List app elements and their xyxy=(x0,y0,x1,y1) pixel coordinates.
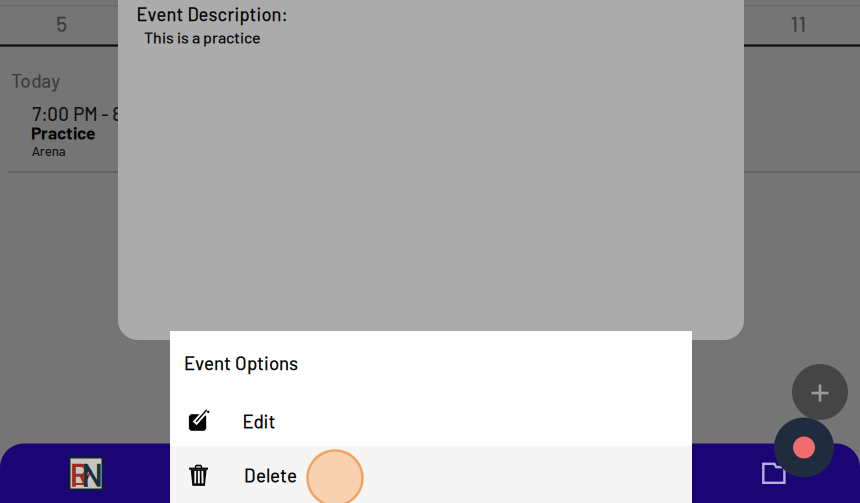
button[interactable]: 6 xyxy=(123,3,246,43)
staticText: This is a practice xyxy=(144,28,261,47)
staticText: 11 xyxy=(791,10,807,36)
button[interactable]: Home xyxy=(54,443,118,503)
staticText: 6 xyxy=(179,10,190,36)
button[interactable]: 11 xyxy=(737,3,860,43)
staticText: Practice xyxy=(31,122,95,143)
staticText: N xyxy=(81,455,102,493)
button[interactable]: Add event xyxy=(792,364,848,420)
staticText: Event Description: xyxy=(137,3,288,25)
staticText: Event Options xyxy=(184,352,298,374)
button[interactable]: Record xyxy=(774,417,834,477)
button[interactable]: Files xyxy=(742,443,806,503)
button[interactable]: Delete xyxy=(170,446,692,503)
staticText: R xyxy=(70,455,90,493)
button[interactable]: 7 xyxy=(246,3,369,43)
staticText: Arena xyxy=(32,143,66,159)
staticText: 5 xyxy=(56,10,67,36)
staticText: Delete xyxy=(244,464,297,486)
button[interactable]: 7:00 PM - 8:30 PM xyxy=(0,96,860,171)
staticText: Edit xyxy=(243,410,276,432)
button[interactable]: Edit xyxy=(170,389,692,444)
staticText: 7:00 PM - 8:30 PM xyxy=(32,102,177,125)
button[interactable]: 5 xyxy=(0,3,123,43)
staticText: Today xyxy=(11,69,60,92)
